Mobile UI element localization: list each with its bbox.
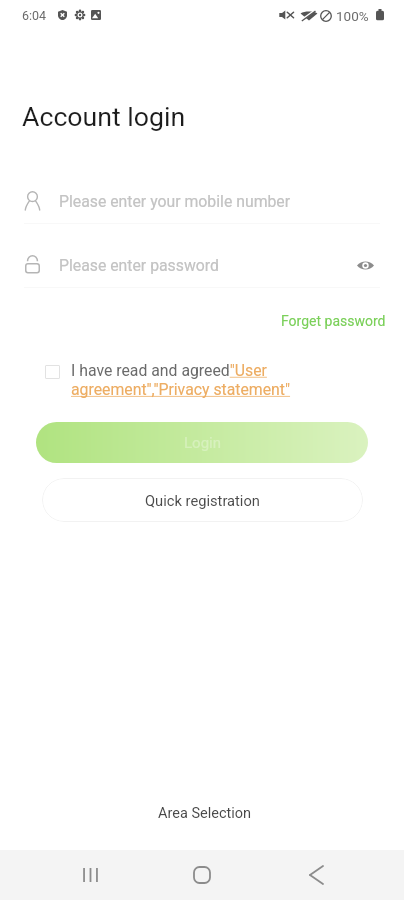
staticText: Login	[184, 434, 221, 452]
button[interactable]: Login	[36, 422, 368, 463]
button[interactable]: Recent apps	[74, 859, 106, 891]
staticText: 100%	[336, 8, 369, 24]
staticText: Account login	[22, 101, 186, 132]
staticText: I have read and agreed"User agreement","…	[71, 361, 295, 399]
button[interactable]: Forget password	[275, 309, 392, 333]
button[interactable]: Quick registration	[42, 478, 363, 522]
button[interactable]: Back	[298, 859, 330, 891]
button[interactable]: Agree to terms checkbox	[45, 365, 60, 379]
staticText: Forget password	[281, 313, 386, 329]
button[interactable]: Area Selection	[150, 801, 260, 826]
button[interactable]: Show password	[351, 251, 379, 279]
staticText: Area Selection	[158, 805, 252, 822]
staticText: Quick registration	[145, 492, 260, 509]
staticText: Please enter your mobile number	[59, 192, 291, 211]
staticText: Please enter password	[59, 256, 219, 275]
button[interactable]: I have read and agreed"User agreement","…	[71, 361, 295, 399]
button[interactable]: Home	[186, 859, 218, 891]
staticText: 6:04	[22, 8, 47, 23]
